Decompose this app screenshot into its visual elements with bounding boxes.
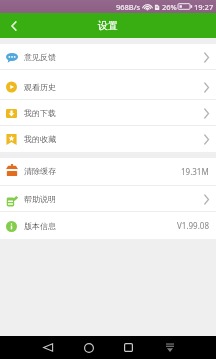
button[interactable]: Back: [37, 337, 58, 358]
staticText: 版本信息: [24, 221, 56, 231]
staticText: 设置: [98, 19, 118, 32]
button[interactable]: 清除缓存: [0, 158, 216, 186]
staticText: 意见反馈: [24, 52, 56, 62]
button[interactable]: 版本信息: [0, 212, 216, 239]
staticText: 19:27: [194, 2, 214, 12]
button[interactable]: 意见反馈: [0, 44, 216, 70]
button[interactable]: Back: [0, 13, 28, 38]
button[interactable]: Hide keyboard: [159, 337, 180, 358]
button[interactable]: 帮助说明: [0, 186, 216, 212]
staticText: V1.99.08: [177, 220, 209, 231]
staticText: 26%: [162, 2, 177, 12]
staticText: 我的下载: [24, 108, 56, 118]
button[interactable]: 观看历史: [0, 70, 216, 100]
staticText: 968B/s: [116, 2, 141, 12]
button[interactable]: 我的下载: [0, 100, 216, 126]
staticText: 我的收藏: [24, 134, 56, 144]
staticText: 观看历史: [24, 82, 56, 92]
button[interactable]: Recents: [118, 337, 139, 358]
button[interactable]: Home: [78, 337, 99, 358]
staticText: 清除缓存: [24, 166, 56, 176]
button[interactable]: 我的收藏: [0, 126, 216, 152]
staticText: 帮助说明: [24, 194, 56, 204]
staticText: 19.31M: [181, 166, 209, 177]
